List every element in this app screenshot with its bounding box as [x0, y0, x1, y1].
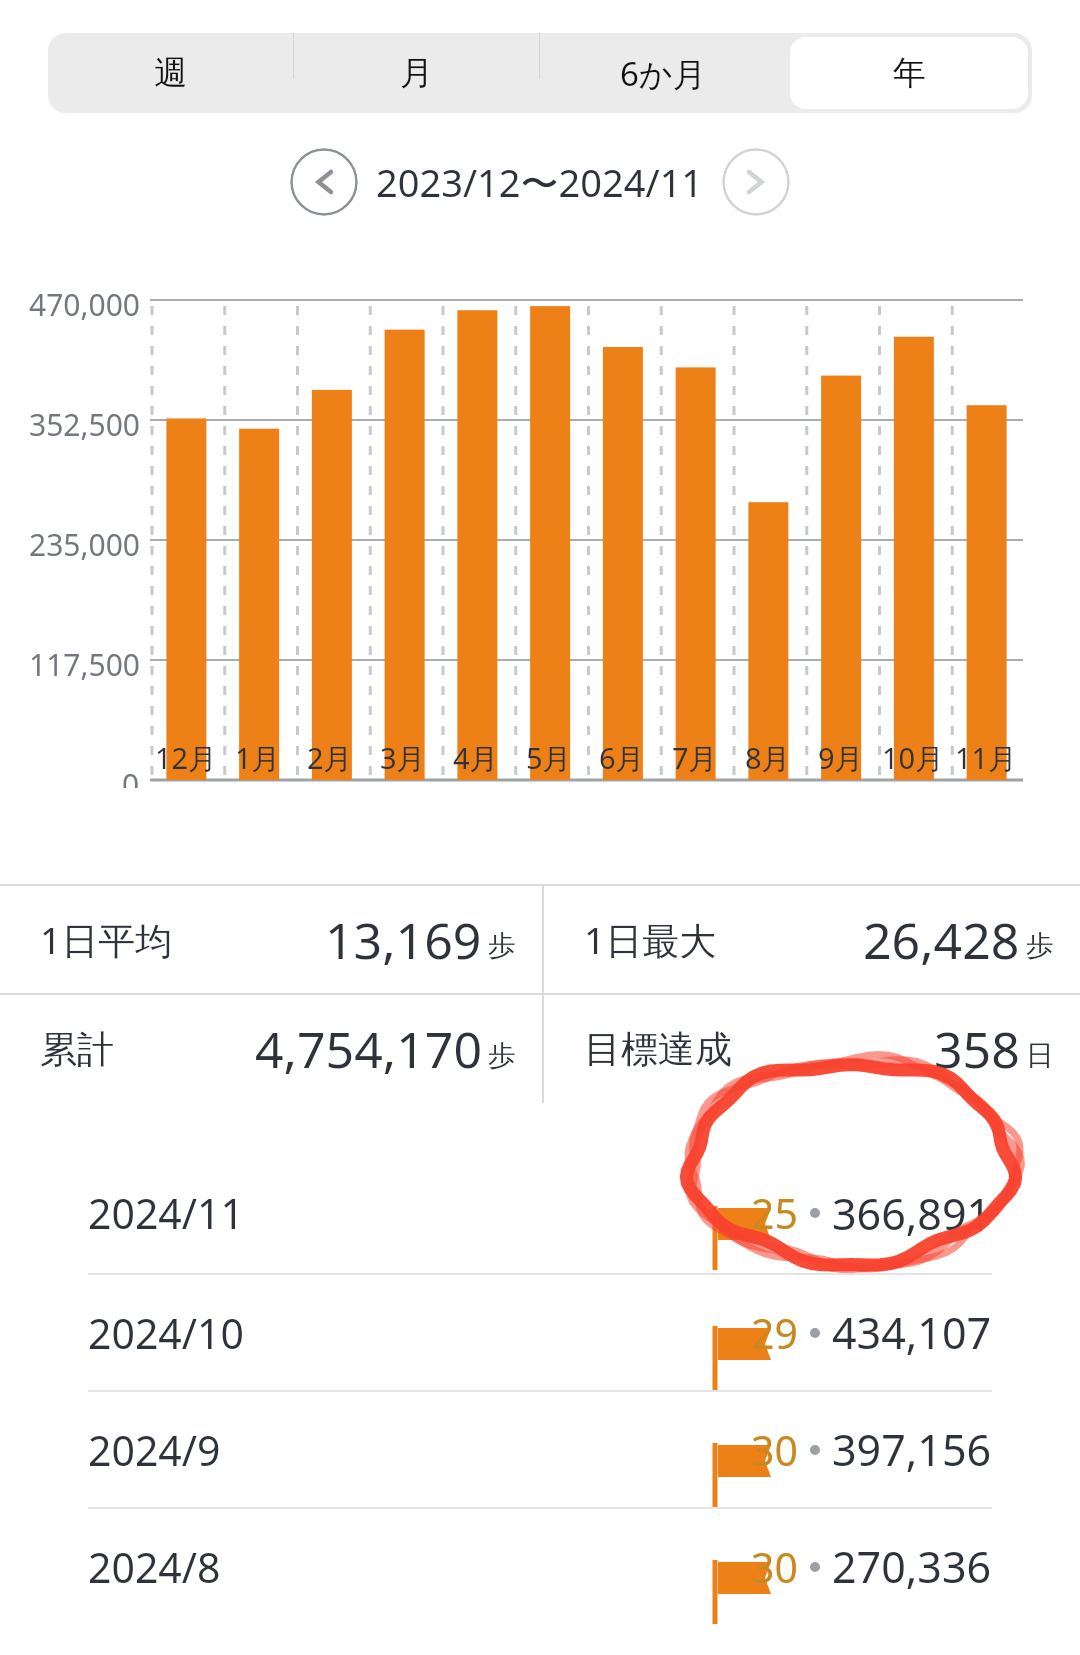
staticText: 29 — [751, 1305, 798, 1361]
staticText: 年 — [893, 52, 926, 94]
staticText: 歩 — [488, 1038, 516, 1073]
button[interactable]: 累計 — [0, 995, 542, 1103]
staticText: 12月 — [155, 738, 218, 778]
button[interactable]: Previous period — [290, 148, 358, 216]
button[interactable]: Next period — [722, 148, 790, 216]
staticText: 4,754,170 — [255, 1015, 482, 1083]
staticText: 累計 — [40, 1026, 114, 1073]
staticText: 日 — [1026, 1038, 1054, 1073]
staticText: 470,000 — [29, 284, 140, 325]
button[interactable]: 6か月 — [540, 33, 786, 113]
staticText: 11月 — [955, 738, 1018, 778]
button[interactable]: 2024/10 — [46, 1275, 1034, 1390]
staticText: 週 — [154, 52, 187, 94]
staticText: 270,336 — [832, 1537, 992, 1596]
staticText: 30 — [751, 1539, 798, 1595]
staticText: 4月 — [453, 738, 499, 778]
button[interactable]: 年 — [790, 37, 1028, 109]
staticText: 2023/12〜2024/11 — [376, 156, 704, 208]
staticText: 358 — [934, 1015, 1020, 1083]
staticText: 10月 — [882, 738, 945, 778]
staticText: 2024/9 — [88, 1422, 221, 1478]
button[interactable]: 2024/8 — [46, 1509, 1034, 1624]
staticText: 2月 — [307, 738, 353, 778]
staticText: 434,107 — [832, 1303, 992, 1362]
button[interactable]: 1日最大 — [544, 886, 1080, 993]
staticText: 1月 — [235, 738, 281, 778]
staticText: 9月 — [818, 738, 864, 778]
staticText: 目標達成 — [584, 1026, 732, 1073]
staticText: 26,428 — [863, 906, 1020, 974]
staticText: 2024/11 — [88, 1185, 244, 1241]
staticText: 1日平均 — [40, 914, 173, 965]
staticText: 235,000 — [29, 524, 140, 565]
staticText: 352,500 — [29, 404, 140, 445]
staticText: 8月 — [745, 738, 791, 778]
staticText: 30 — [751, 1422, 798, 1478]
staticText: 366,891 — [832, 1184, 992, 1243]
staticText: 0 — [122, 764, 140, 788]
button[interactable]: 1日平均 — [0, 886, 542, 993]
staticText: 3月 — [380, 738, 426, 778]
staticText: 歩 — [1026, 928, 1054, 963]
staticText: 25 — [751, 1185, 798, 1241]
staticText: 2024/10 — [88, 1305, 244, 1361]
staticText: 歩 — [488, 928, 516, 963]
staticText: 117,500 — [29, 644, 140, 685]
staticText: 月 — [400, 52, 433, 94]
staticText: 1日最大 — [584, 914, 717, 965]
staticText: 5月 — [526, 738, 572, 778]
button[interactable]: 目標達成 — [544, 995, 1080, 1103]
button[interactable]: 週 — [48, 33, 293, 113]
button[interactable]: 2024/9 — [46, 1392, 1034, 1507]
button[interactable]: 2024/11 — [46, 1153, 1034, 1273]
staticText: 397,156 — [832, 1420, 992, 1479]
staticText: 2024/8 — [88, 1539, 221, 1595]
staticText: 6か月 — [620, 51, 706, 96]
button[interactable]: 月 — [294, 33, 539, 113]
staticText: 7月 — [672, 738, 718, 778]
staticText: 6月 — [599, 738, 645, 778]
staticText: 13,169 — [325, 906, 482, 974]
